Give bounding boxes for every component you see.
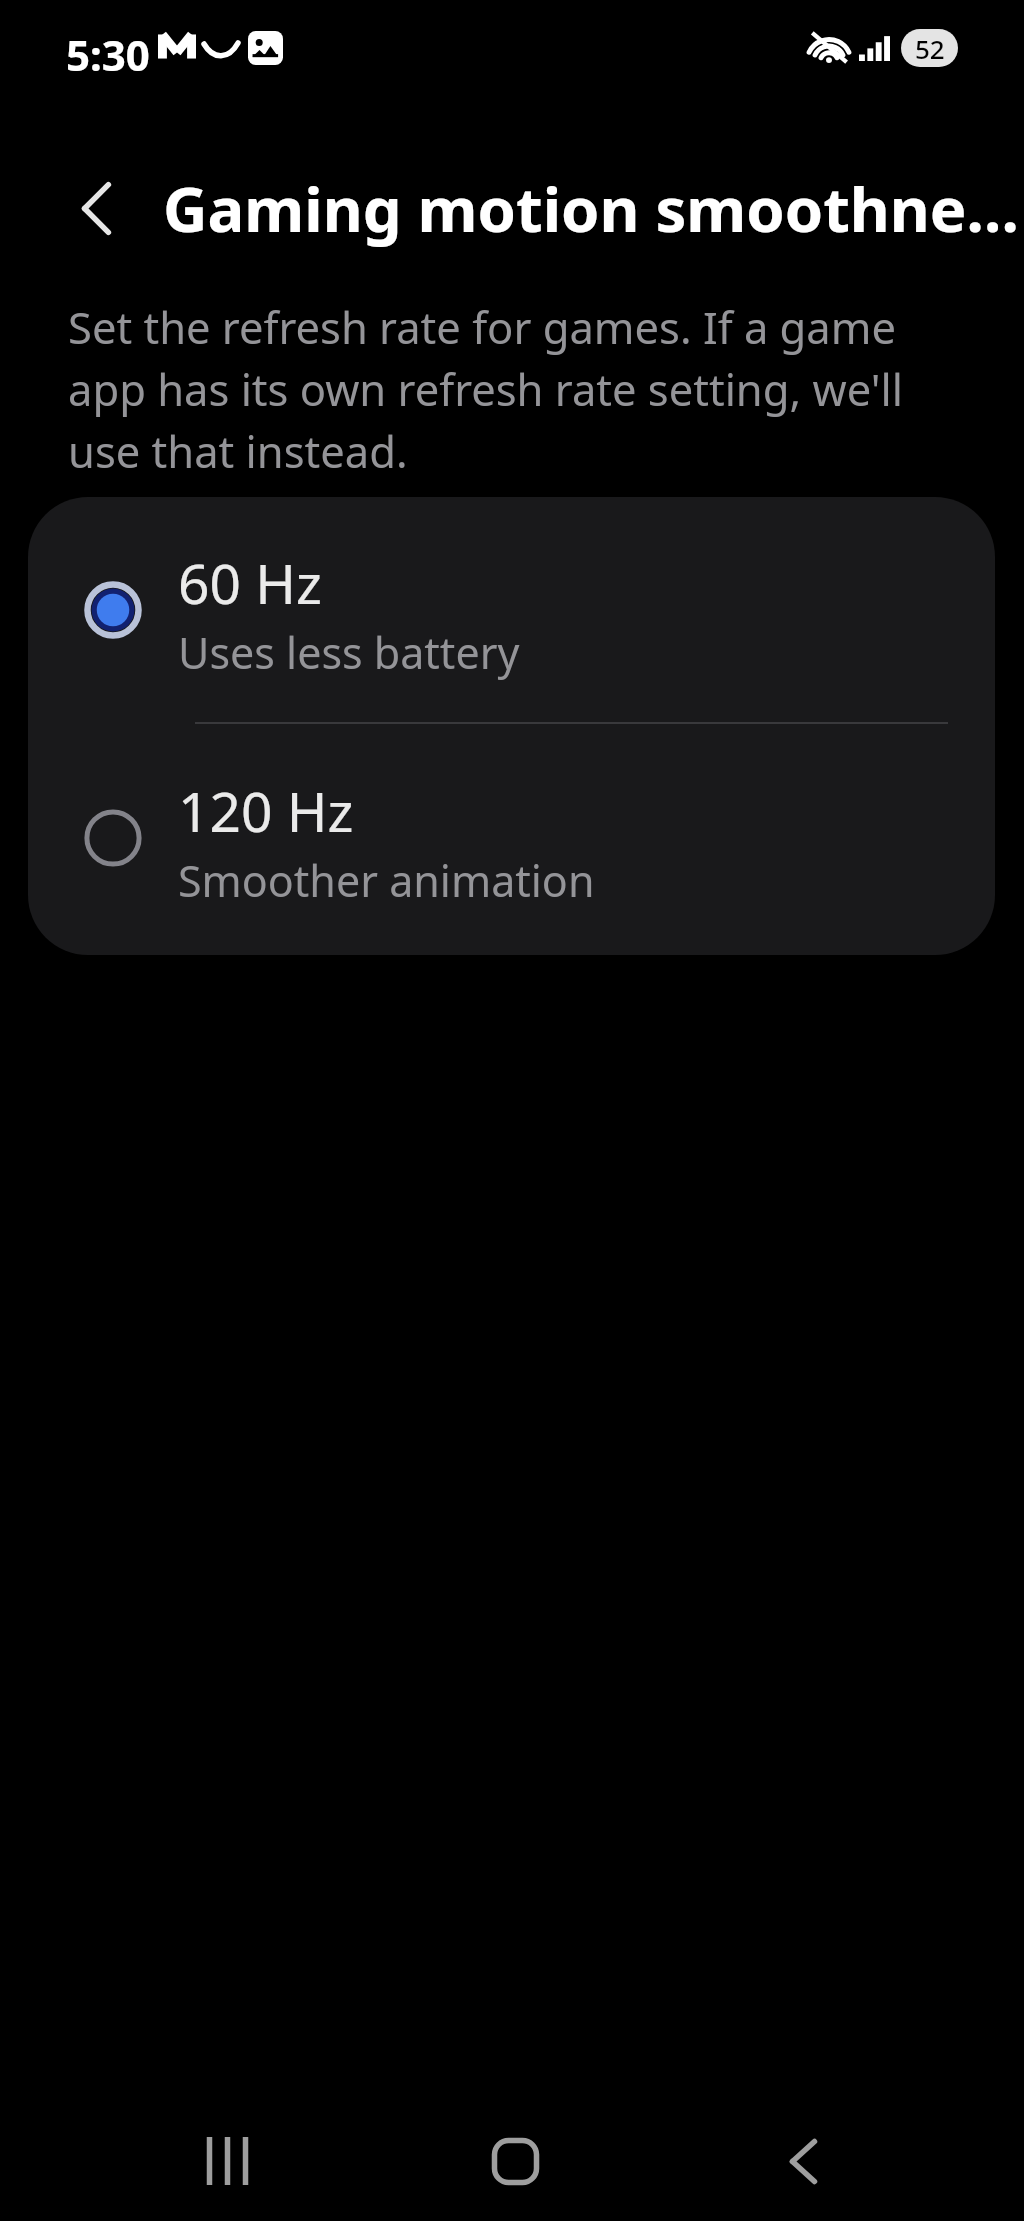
staticText: Gaming motion smoothne…	[163, 166, 1020, 250]
button[interactable]: Home	[455, 2101, 575, 2221]
button[interactable]: 120 Hz	[28, 725, 995, 955]
staticText: Set the refresh rate for games. If a gam…	[68, 297, 903, 480]
staticText: 60 Hz	[178, 545, 322, 620]
button[interactable]: 60 Hz	[28, 497, 995, 723]
staticText: 52	[915, 31, 945, 66]
staticText: 5:30	[66, 26, 150, 83]
button[interactable]: Back	[743, 2101, 863, 2221]
staticText: Uses less battery	[178, 623, 520, 682]
button[interactable]: Recent apps	[167, 2101, 287, 2221]
staticText: 120 Hz	[178, 773, 354, 848]
button[interactable]: Navigate up	[56, 168, 136, 248]
staticText: Smoother animation	[178, 851, 595, 910]
